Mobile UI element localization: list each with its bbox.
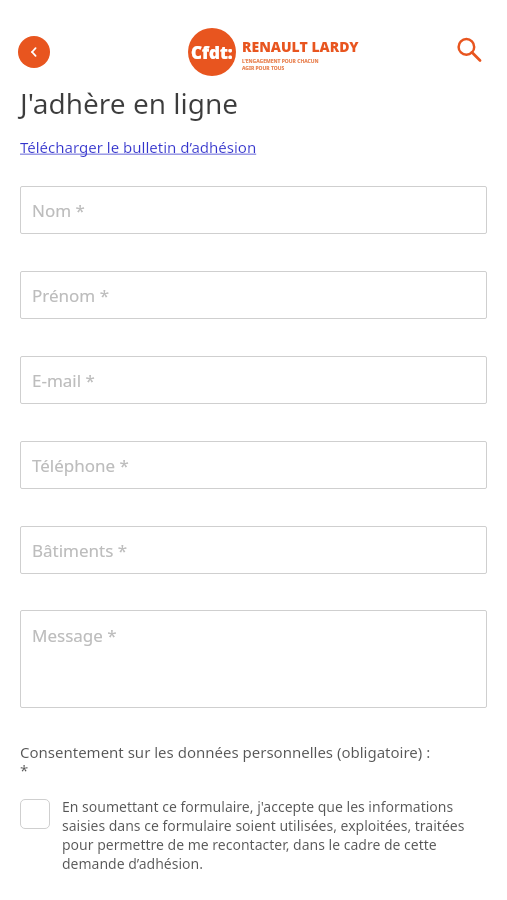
- staticText: L'ENGAGEMENT POUR CHACUN: [242, 58, 319, 65]
- staticText: RENAULT LARDY: [242, 37, 359, 56]
- button[interactable]: Search: [449, 30, 489, 70]
- staticText: AGIR POUR TOUS: [242, 65, 285, 72]
- button[interactable]: En soumettant ce formulaire, j'accepte q…: [20, 797, 487, 873]
- staticText: Téléphone *: [32, 454, 129, 477]
- button[interactable]: Prénom *: [20, 271, 487, 319]
- staticText: Message *: [32, 624, 117, 647]
- button[interactable]: E-mail *: [20, 356, 487, 404]
- staticText: J'adhère en ligne: [20, 84, 239, 122]
- staticText: Bâtiments *: [32, 539, 128, 562]
- staticText: Prénom *: [32, 284, 110, 307]
- staticText: E-mail *: [32, 369, 95, 392]
- staticText: Cfdt:: [191, 41, 233, 64]
- button[interactable]: Back: [18, 36, 50, 68]
- staticText: Nom *: [32, 199, 85, 222]
- button[interactable]: Nom *: [20, 186, 487, 234]
- button[interactable]: Télécharger le bulletin d’adhésion: [20, 137, 257, 157]
- staticText: En soumettant ce formulaire, j'accepte q…: [62, 797, 487, 873]
- button[interactable]: Message *: [20, 610, 487, 708]
- button[interactable]: Téléphone *: [20, 441, 487, 489]
- button[interactable]: Bâtiments *: [20, 526, 487, 574]
- staticText: Consentement sur les données personnelle…: [20, 742, 431, 781]
- button[interactable]: CFDT Renault Lardy: [188, 28, 359, 76]
